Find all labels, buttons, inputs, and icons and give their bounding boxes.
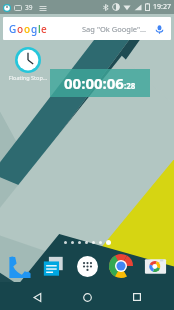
staticText: Floating Stop... — [8, 74, 48, 81]
button[interactable]: Messages — [38, 251, 68, 281]
button[interactable]: Chrome — [106, 251, 136, 281]
staticText: 00:00:06 — [64, 73, 124, 93]
button[interactable]: Apps — [72, 251, 102, 281]
button[interactable]: 00:00:06 — [50, 69, 150, 97]
staticText: o — [17, 22, 24, 36]
button[interactable]: Recents — [124, 284, 150, 310]
staticText: l — [38, 22, 41, 36]
staticText: G — [9, 22, 17, 36]
staticText: :28 — [124, 80, 136, 91]
button[interactable]: Voice search — [153, 23, 165, 35]
button[interactable]: Home — [74, 284, 100, 310]
staticText: g — [31, 22, 38, 36]
button[interactable]: Camera — [140, 251, 170, 281]
staticText: 39 — [25, 3, 33, 12]
staticText: e — [41, 22, 47, 36]
staticText: 19:27 — [153, 2, 171, 12]
button[interactable]: Back — [24, 284, 50, 310]
button[interactable]: Phone — [4, 251, 34, 281]
button[interactable]: G — [3, 17, 171, 40]
staticText: Sag "Ok Google"... — [82, 24, 147, 34]
button[interactable]: Floating Stop... — [8, 47, 48, 81]
staticText: o — [24, 22, 31, 36]
